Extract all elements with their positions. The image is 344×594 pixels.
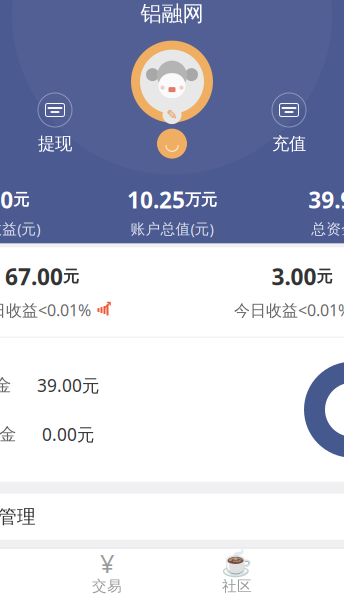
- staticText: 充值: [272, 133, 306, 154]
- staticText: 10.25: [127, 185, 185, 215]
- staticText: 元: [316, 266, 332, 286]
- staticText: ☕: [221, 549, 253, 578]
- staticText: 0.00: [0, 185, 13, 215]
- button[interactable]: ☻: [302, 546, 344, 594]
- staticText: 3.00: [271, 261, 316, 291]
- button[interactable]: ⌂: [0, 546, 42, 594]
- staticText: 锁定资金: [0, 423, 16, 445]
- staticText: ◡: [165, 134, 178, 153]
- button[interactable]: 充值: [234, 89, 344, 158]
- staticText: 铝融网: [140, 0, 203, 27]
- staticText: 今日收益<0.01%: [234, 299, 344, 321]
- staticText: 0.00元: [42, 423, 94, 446]
- staticText: 账户管理: [0, 505, 36, 528]
- button[interactable]: ☕: [172, 546, 302, 594]
- staticText: 社区: [222, 577, 252, 594]
- staticText: 元: [63, 266, 79, 286]
- staticText: 可用资金: [0, 374, 11, 396]
- staticText: 39.90: [308, 185, 344, 215]
- button[interactable]: 提现: [0, 89, 110, 158]
- button[interactable]: ¥: [42, 546, 172, 594]
- staticText: 累计收益(元): [0, 219, 40, 238]
- staticText: 交易: [92, 577, 122, 594]
- staticText: 昨日收益<0.01%: [0, 299, 91, 321]
- button[interactable]: Hide balance: [157, 129, 187, 159]
- staticText: ✎: [166, 107, 177, 122]
- staticText: 万元: [185, 190, 217, 210]
- staticText: 67.00: [5, 261, 63, 291]
- staticText: 提现: [38, 133, 72, 154]
- staticText: ¥: [100, 546, 114, 580]
- button[interactable]: 账户管理: [0, 494, 344, 540]
- staticText: 39.00元: [37, 374, 99, 397]
- button[interactable]: Profile photo: [131, 41, 213, 123]
- staticText: 元: [13, 190, 29, 210]
- staticText: ↗: [102, 299, 112, 312]
- staticText: 总资金(元): [311, 219, 344, 238]
- staticText: 账户总值(元): [130, 219, 213, 238]
